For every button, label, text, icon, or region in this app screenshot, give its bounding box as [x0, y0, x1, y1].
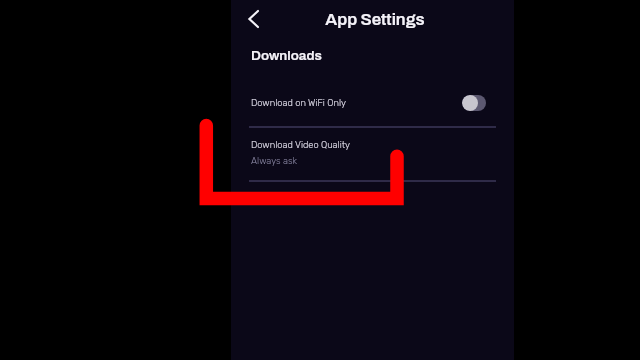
staticText: Downloads — [251, 48, 322, 63]
button[interactable]: Back — [238, 3, 270, 35]
staticText: Download Video Quality — [251, 139, 351, 150]
button[interactable]: App Settings — [233, 8, 516, 30]
staticText: App Settings — [325, 10, 425, 28]
button[interactable]: Download Video Quality — [231, 133, 514, 178]
staticText: Download on WiFi Only — [251, 97, 346, 108]
button[interactable]: Download on WiFi Only, off — [462, 95, 486, 111]
button[interactable]: Download on WiFi Only — [231, 89, 514, 116]
staticText: Always ask — [251, 155, 298, 166]
